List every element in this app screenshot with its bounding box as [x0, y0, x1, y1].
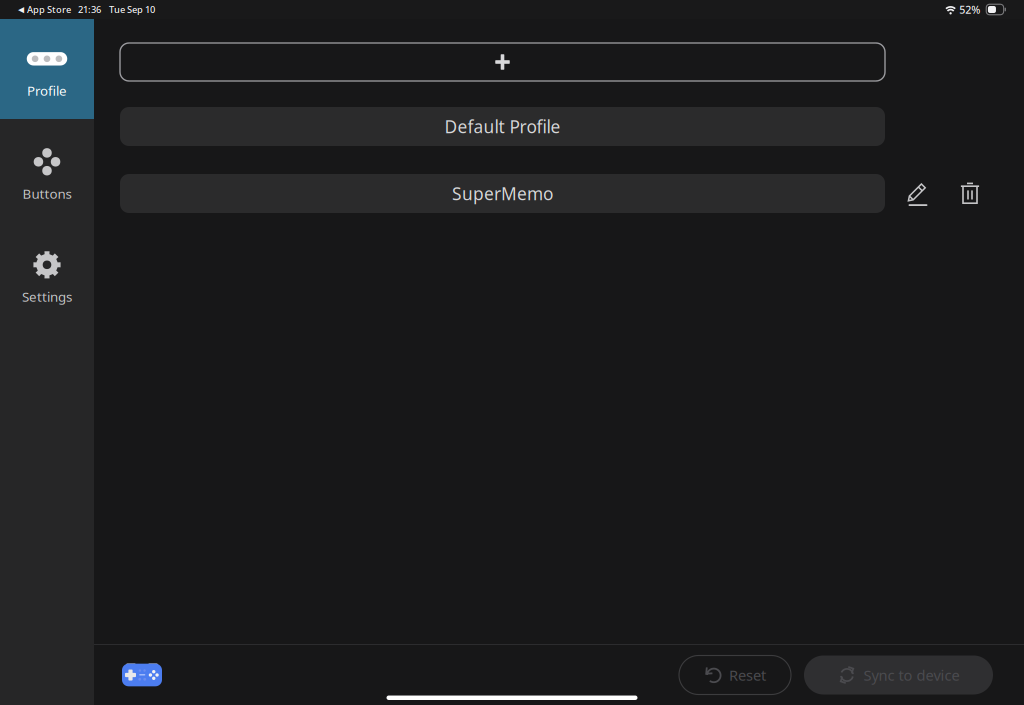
- staticText: Reset: [729, 665, 766, 685]
- button[interactable]: Edit: [901, 172, 935, 215]
- button[interactable]: Default Profile: [120, 107, 885, 146]
- staticText: ◀: [18, 5, 24, 14]
- staticText: Tue Sep 10: [109, 3, 155, 16]
- staticText: SuperMemo: [452, 182, 553, 205]
- staticText: Profile: [27, 82, 67, 99]
- button[interactable]: Settings: [0, 225, 94, 325]
- button[interactable]: Buttons: [0, 122, 94, 222]
- button[interactable]: Controller: [120, 653, 164, 697]
- button[interactable]: Delete: [953, 172, 987, 215]
- staticText: App Store: [27, 3, 71, 16]
- staticText: 21:36: [78, 3, 101, 16]
- button[interactable]: SuperMemo: [120, 174, 885, 213]
- staticText: 52%: [959, 2, 980, 17]
- button[interactable]: Profile: [0, 19, 94, 119]
- staticText: Default Profile: [444, 115, 560, 138]
- staticText: Sync to device: [863, 665, 959, 685]
- button[interactable]: Add profile: [120, 43, 885, 81]
- button[interactable]: Reset: [679, 655, 791, 694]
- staticText: Buttons: [22, 185, 71, 202]
- button[interactable]: Sync to device: [804, 655, 993, 694]
- staticText: Settings: [22, 288, 72, 305]
